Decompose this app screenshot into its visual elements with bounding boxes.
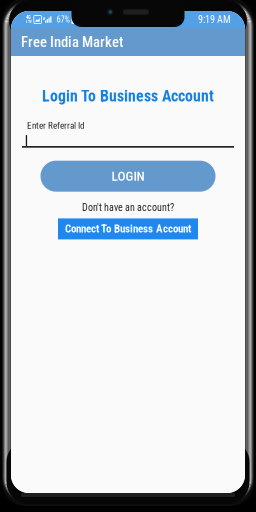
staticText: Login To Business Account xyxy=(42,87,214,105)
staticText: LOGIN xyxy=(111,168,144,184)
staticText: Don't have an account? xyxy=(82,202,174,213)
staticText: 4G xyxy=(26,15,31,20)
staticText: Free India Market xyxy=(21,33,123,51)
button[interactable]: Connect To Business Account xyxy=(58,218,198,239)
staticText: 9:19 AM xyxy=(198,14,231,25)
staticText: 67% xyxy=(56,14,69,24)
staticText: R xyxy=(43,16,45,21)
button[interactable]: LOGIN xyxy=(40,161,215,192)
staticText: Enter Referral Id xyxy=(27,120,84,131)
staticText: Connect To Business Account xyxy=(65,222,191,235)
staticText: LTE xyxy=(26,19,32,24)
